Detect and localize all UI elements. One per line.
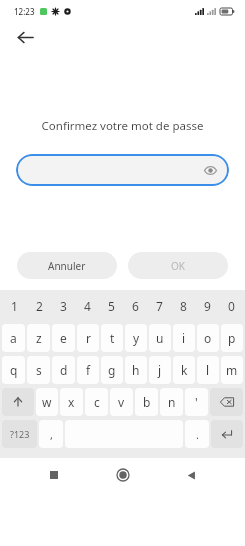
- button[interactable]: g: [101, 356, 123, 384]
- button[interactable]: Back: [176, 460, 206, 490]
- button[interactable]: s: [27, 356, 50, 384]
- staticText: d: [60, 362, 68, 378]
- button[interactable]: 9: [195, 290, 219, 322]
- button[interactable]: Recents: [39, 460, 69, 490]
- staticText: m: [226, 362, 238, 378]
- button[interactable]: z: [27, 324, 50, 352]
- button[interactable]: 3: [51, 290, 75, 322]
- staticText: k: [181, 362, 188, 378]
- staticText: 3: [60, 298, 67, 314]
- button[interactable]: Enter: [211, 420, 243, 448]
- button[interactable]: Back: [10, 22, 40, 52]
- button[interactable]: .: [185, 420, 209, 448]
- staticText: r: [86, 330, 91, 346]
- staticText: 4: [84, 298, 91, 314]
- staticText: o: [204, 330, 212, 346]
- button[interactable]: Backspace: [210, 388, 243, 416]
- staticText: y: [133, 330, 140, 346]
- staticText: ': [195, 394, 198, 410]
- button[interactable]: Show password: [201, 161, 219, 179]
- button[interactable]: b: [135, 388, 158, 416]
- button[interactable]: ,: [39, 420, 63, 448]
- staticText: b: [143, 394, 151, 410]
- button[interactable]: k: [173, 356, 195, 384]
- staticText: l: [206, 362, 210, 378]
- button[interactable]: x: [60, 388, 83, 416]
- staticText: 8: [180, 298, 187, 314]
- button[interactable]: 7: [147, 290, 171, 322]
- button[interactable]: ?123: [2, 420, 37, 448]
- staticText: q: [10, 362, 18, 378]
- button[interactable]: 0: [219, 290, 243, 322]
- staticText: 2: [36, 298, 43, 314]
- staticText: 12:23: [14, 6, 35, 17]
- staticText: c: [94, 394, 100, 410]
- button[interactable]: Shift: [2, 388, 34, 416]
- staticText: Annuler: [48, 259, 86, 273]
- staticText: z: [36, 330, 42, 346]
- staticText: .: [196, 427, 199, 442]
- staticText: v: [118, 394, 125, 410]
- staticText: p: [228, 330, 236, 346]
- button[interactable]: 6: [123, 290, 147, 322]
- button[interactable]: 4: [75, 290, 99, 322]
- staticText: u: [156, 330, 164, 346]
- staticText: 5: [108, 298, 115, 314]
- staticText: w: [42, 394, 52, 410]
- button[interactable]: p: [221, 324, 243, 352]
- staticText: 7: [156, 298, 163, 314]
- button[interactable]: ': [185, 388, 208, 416]
- button[interactable]: o: [197, 324, 219, 352]
- button[interactable]: 8: [171, 290, 195, 322]
- staticText: t: [110, 330, 115, 346]
- button[interactable]: c: [85, 388, 108, 416]
- button[interactable]: d: [52, 356, 75, 384]
- button[interactable]: Home: [108, 460, 138, 490]
- staticText: i: [182, 330, 186, 346]
- staticText: h: [132, 362, 140, 378]
- button[interactable]: 1: [2, 290, 27, 322]
- staticText: 6: [132, 298, 139, 314]
- button[interactable]: j: [149, 356, 171, 384]
- button[interactable]: r: [77, 324, 99, 352]
- staticText: ?123: [10, 428, 30, 440]
- staticText: j: [158, 362, 162, 378]
- staticText: s: [36, 362, 42, 378]
- button[interactable]: w: [36, 388, 58, 416]
- button[interactable]: i: [173, 324, 195, 352]
- button[interactable]: y: [125, 324, 147, 352]
- button[interactable]: Show password: [16, 154, 229, 186]
- button[interactable]: h: [125, 356, 147, 384]
- button[interactable]: f: [77, 356, 99, 384]
- staticText: Confirmez votre mot de passe: [0, 118, 245, 134]
- staticText: 1: [11, 298, 18, 314]
- staticText: 9: [204, 298, 211, 314]
- button[interactable]: q: [2, 356, 25, 384]
- staticText: e: [60, 330, 67, 346]
- button[interactable]: t: [101, 324, 123, 352]
- button[interactable]: n: [160, 388, 183, 416]
- staticText: OK: [171, 259, 185, 273]
- button[interactable]: Annuler: [17, 252, 117, 279]
- button[interactable]: v: [110, 388, 133, 416]
- button[interactable]: e: [52, 324, 75, 352]
- staticText: g: [108, 362, 116, 378]
- button[interactable]: a: [2, 324, 25, 352]
- staticText: f: [86, 362, 91, 378]
- staticText: 0: [228, 298, 235, 314]
- button[interactable]: 5: [99, 290, 123, 322]
- staticText: a: [10, 330, 17, 346]
- staticText: x: [68, 394, 75, 410]
- button[interactable]: l: [197, 356, 219, 384]
- staticText: ,: [50, 427, 53, 442]
- button[interactable]: m: [221, 356, 243, 384]
- staticText: n: [168, 394, 176, 410]
- button[interactable]: 2: [27, 290, 51, 322]
- button[interactable]: OK: [128, 252, 228, 279]
- button[interactable]: u: [149, 324, 171, 352]
